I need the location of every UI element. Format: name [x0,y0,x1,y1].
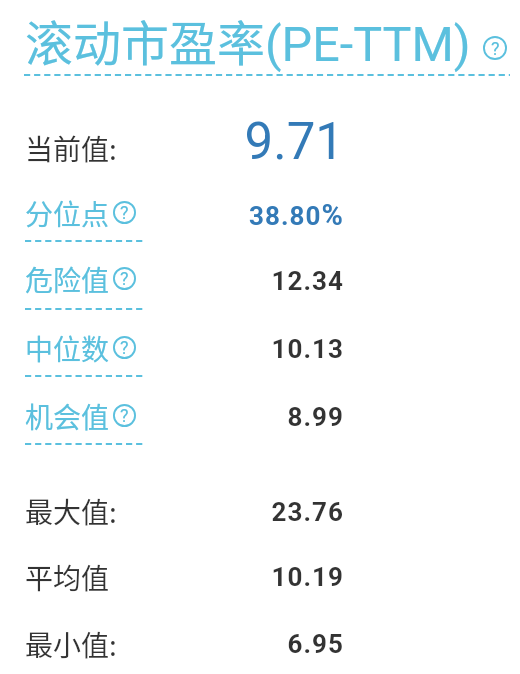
button[interactable]: 指标说明 [483,36,507,60]
button[interactable]: 中位数说明 [113,336,136,359]
button[interactable]: 机会值说明 [113,404,136,427]
staticText: ? [120,405,129,426]
staticText: 38.80% [0,198,344,232]
staticText: ? [120,268,129,289]
staticText: 8.99 [0,402,344,432]
staticText: 当前值: [25,128,117,169]
button[interactable]: 机会值 [25,396,136,437]
staticText: 最大值: [25,491,117,532]
button[interactable]: 当前值: [25,128,117,169]
staticText: 10.19 [0,562,344,592]
staticText: 危险值 [25,259,110,300]
button[interactable]: 最小值: [25,624,117,665]
staticText: 23.76 [0,497,344,527]
staticText: 10.13 [0,334,344,364]
button[interactable]: 平均值 [25,557,110,598]
staticText: 12.34 [0,266,344,296]
staticText: 9.71 [0,112,344,172]
staticText: 滚动市盈率(PE-TTM) [25,5,471,75]
button[interactable]: 危险值说明 [113,267,136,290]
staticText: 平均值 [25,557,110,598]
button[interactable]: 最大值: [25,491,117,532]
button[interactable]: 中位数 [25,328,136,369]
staticText: 中位数 [25,328,110,369]
staticText: 机会值 [25,396,110,437]
staticText: ? [491,38,500,59]
staticText: 最小值: [25,624,117,665]
staticText: ? [120,202,129,223]
staticText: 6.95 [0,629,344,659]
staticText: ? [120,337,129,358]
button[interactable]: 危险值 [25,259,136,300]
button[interactable]: 分位点说明 [113,201,136,224]
button[interactable]: 滚动市盈率(PE-TTM) [25,5,471,75]
staticText: 分位点 [25,193,110,234]
button[interactable]: 分位点 [25,193,136,234]
